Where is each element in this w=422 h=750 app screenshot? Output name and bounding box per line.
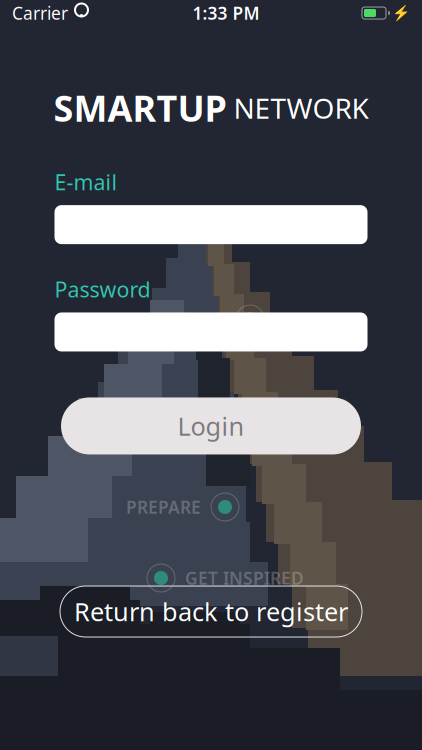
button[interactable]: Return back to register — [60, 586, 362, 637]
staticText: 1:33 PM — [192, 1, 259, 24]
staticText: Login — [177, 409, 244, 443]
button[interactable]: Password — [54, 312, 367, 351]
staticText: GET INSPIRED — [185, 566, 304, 589]
button[interactable]: E-mail — [54, 205, 367, 244]
staticText: VALIDATE — [236, 401, 315, 424]
staticText: Password — [54, 275, 150, 303]
staticText: ⚡ — [392, 5, 410, 21]
button[interactable]: Login — [61, 397, 361, 454]
staticText: Carrier — [12, 1, 68, 24]
staticText: GROW — [172, 307, 226, 330]
staticText: E-mail — [54, 168, 117, 196]
staticText: SMARTUP — [53, 84, 226, 132]
staticText: Return back to register — [74, 595, 348, 628]
staticText: NETWORK — [233, 89, 368, 126]
staticText: PREPARE — [126, 495, 201, 518]
